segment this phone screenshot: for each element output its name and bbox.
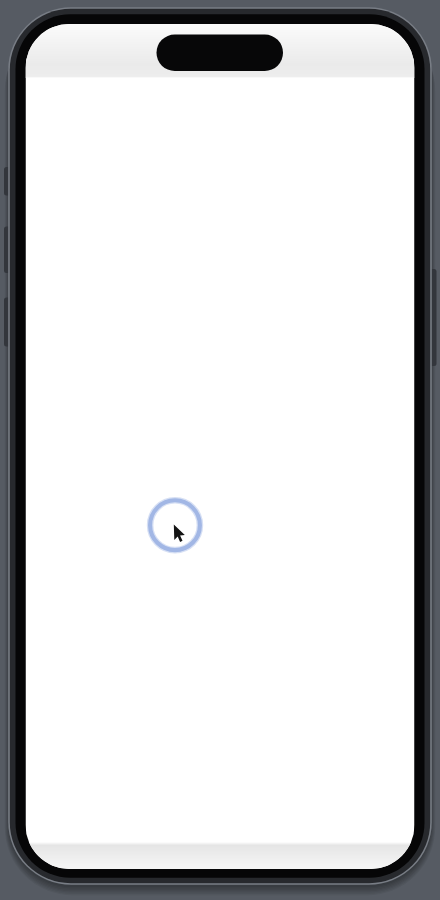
button[interactable] (150, 500, 200, 550)
